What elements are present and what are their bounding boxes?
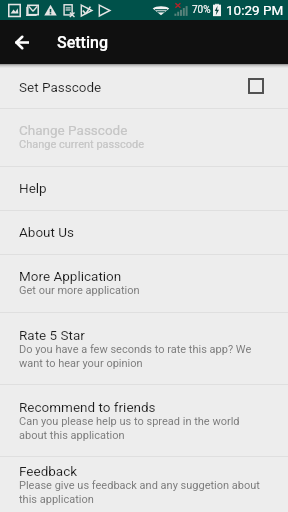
button[interactable]: Feedback	[0, 457, 288, 512]
staticText: More Application	[19, 268, 122, 284]
staticText: Can you please help us to spread in the …	[19, 415, 264, 441]
button[interactable]: Back	[8, 28, 36, 56]
staticText: Recommend to friends	[19, 399, 156, 415]
staticText: Get our more application	[19, 284, 140, 297]
staticText: About Us	[19, 224, 75, 240]
button[interactable]: Set Passcode toggle	[249, 79, 263, 93]
button[interactable]: Set Passcode	[0, 64, 288, 108]
button[interactable]: More Application	[0, 255, 288, 312]
staticText: Rate 5 Star	[19, 327, 85, 343]
staticText: 10:29 PM	[226, 2, 284, 18]
button[interactable]: Rate 5 Star	[0, 313, 288, 384]
staticText: Change current passcode	[19, 138, 145, 151]
button[interactable]: Help	[0, 167, 288, 210]
staticText: Help	[19, 180, 47, 196]
button[interactable]: Change Passcode	[0, 109, 288, 166]
staticText: Change Passcode	[19, 122, 128, 138]
button[interactable]: About Us	[0, 211, 288, 254]
staticText: Do you have a few seconds to rate this a…	[19, 343, 264, 369]
staticText: Please give us feedback and any suggetio…	[19, 479, 264, 505]
staticText: Setting	[57, 33, 108, 52]
staticText: Set Passcode	[19, 79, 102, 95]
button[interactable]: Recommend to friends	[0, 385, 288, 456]
staticText: Feedback	[19, 463, 78, 479]
staticText: 70%	[192, 4, 211, 16]
